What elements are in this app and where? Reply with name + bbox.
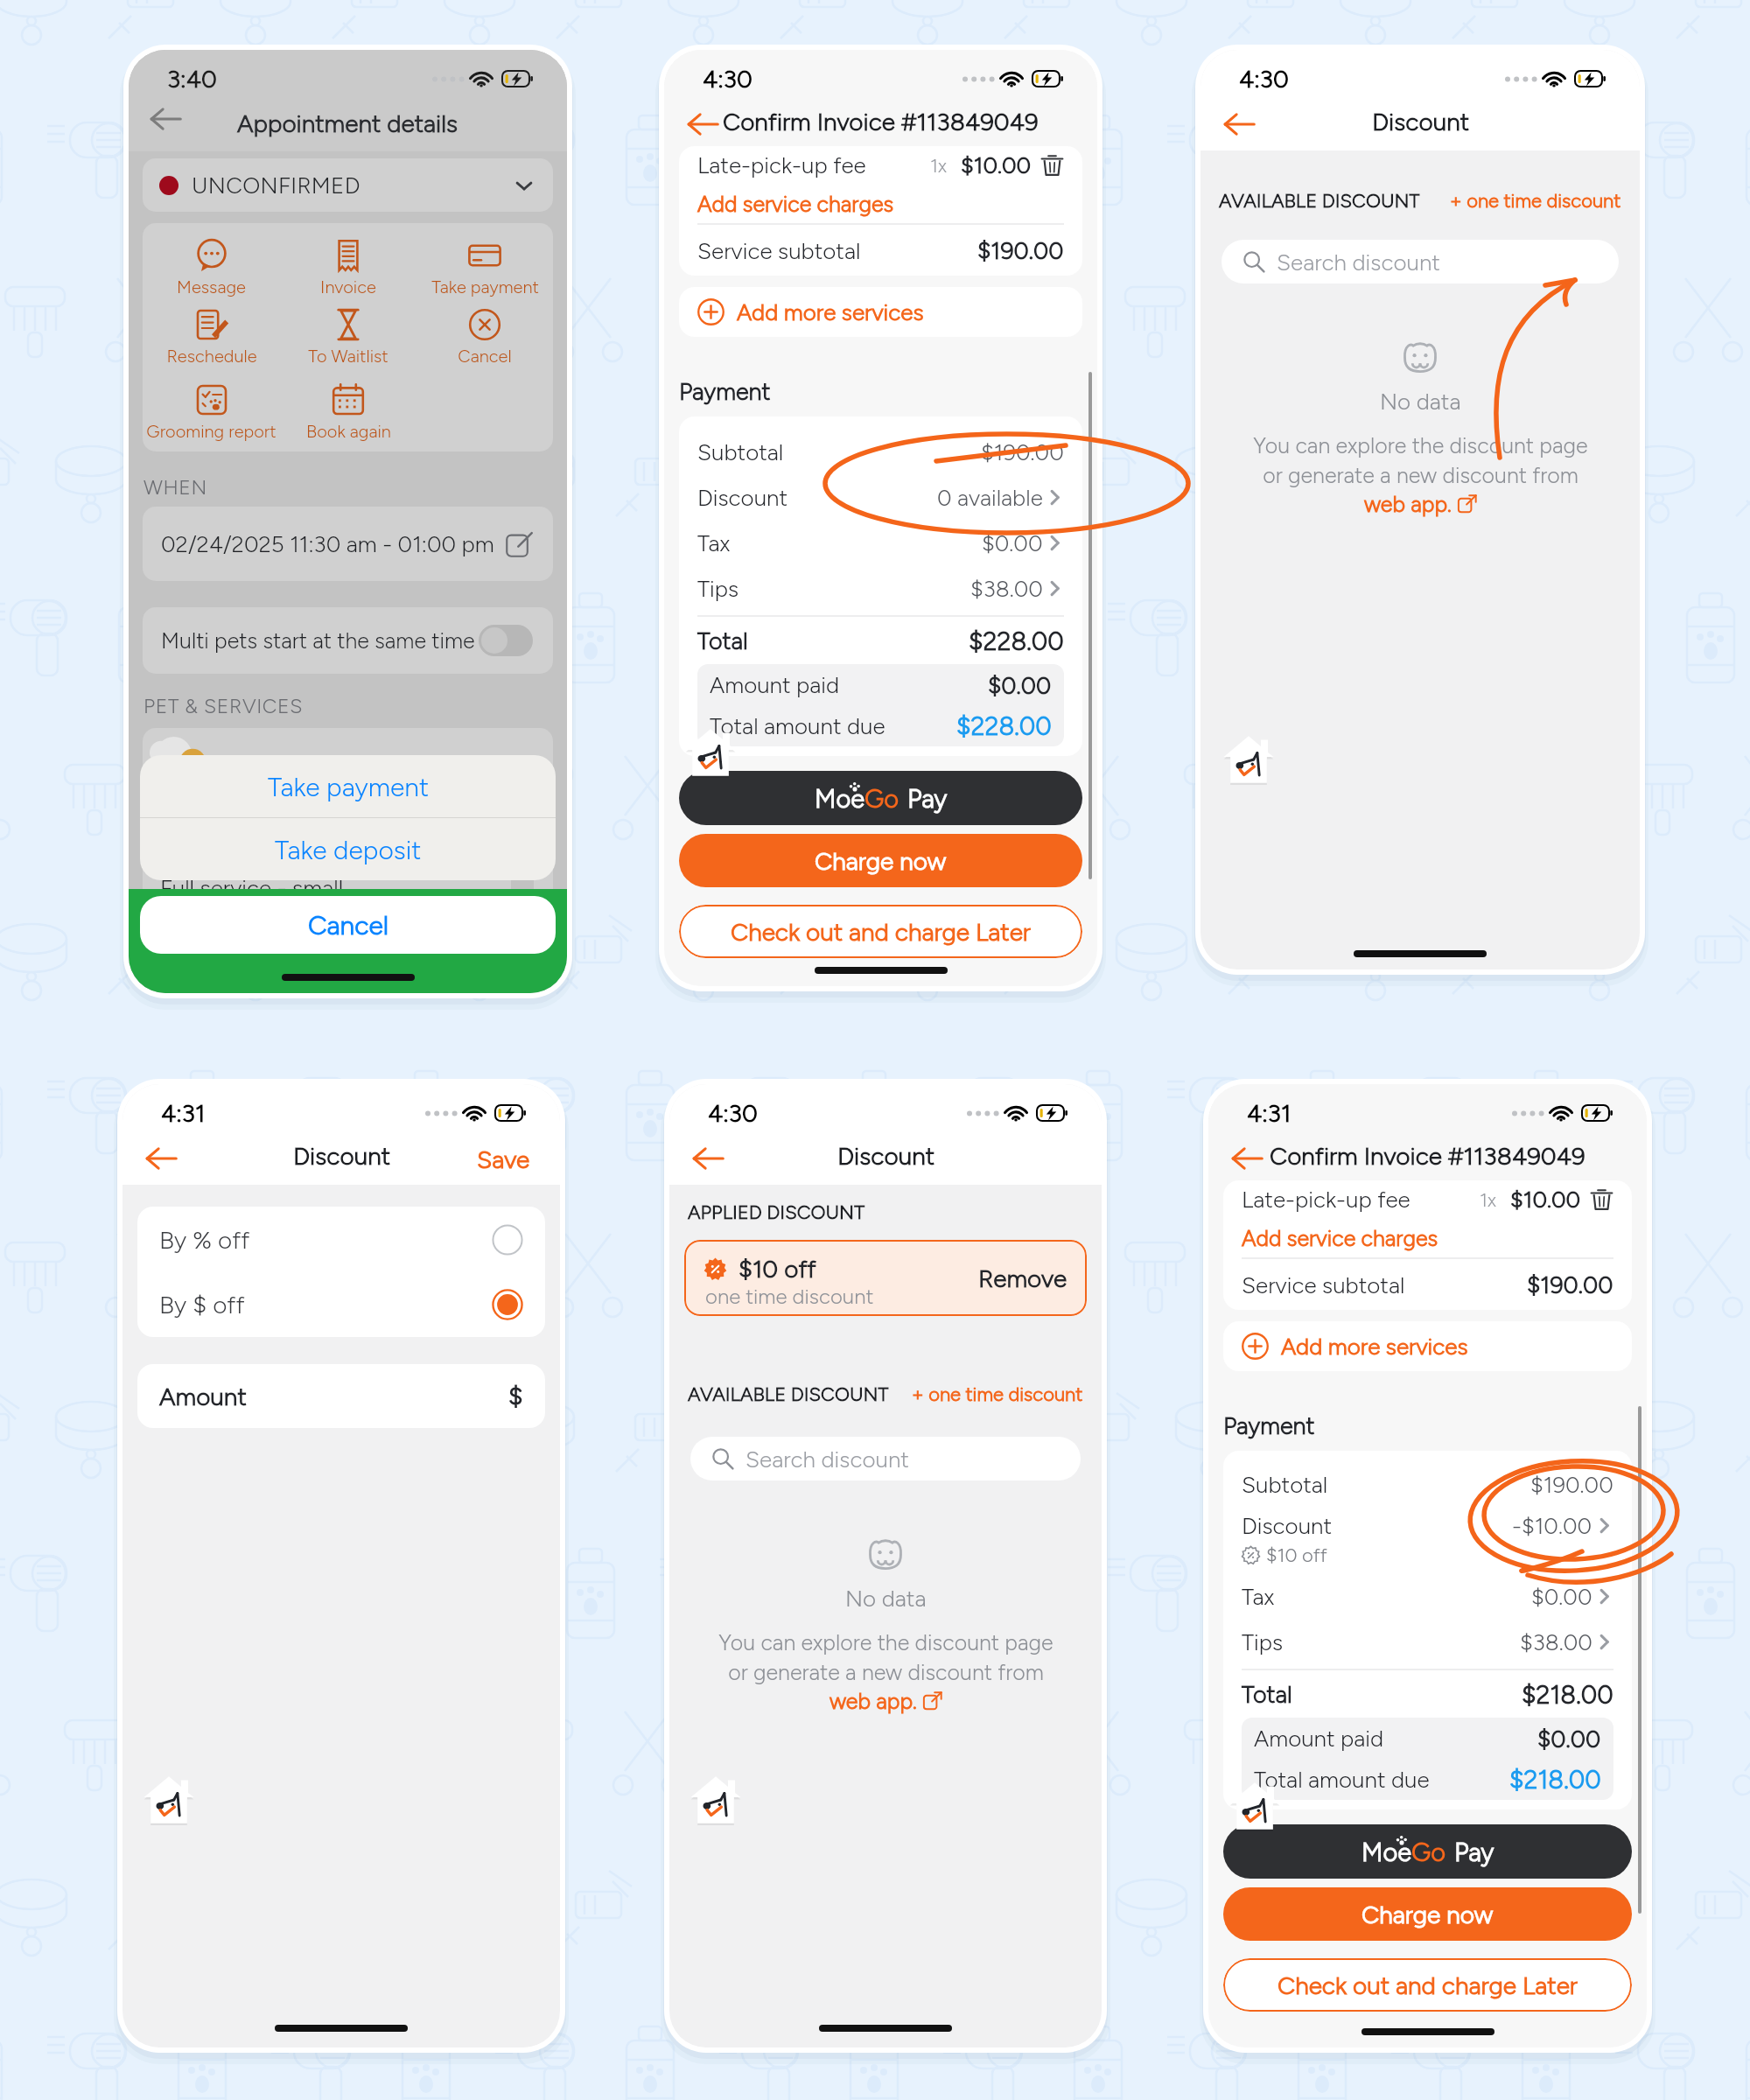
- button[interactable]: 02/24/2025 11:30 am - 01:00 pm: [143, 507, 553, 581]
- staticText: 4:30: [708, 1098, 758, 1128]
- button[interactable]: Back: [138, 1136, 184, 1181]
- button[interactable]: Grooming report: [143, 382, 280, 442]
- staticText: Subtotal: [1242, 1471, 1530, 1498]
- button[interactable]: Back: [1216, 101, 1262, 147]
- button[interactable]: Subtotal: [697, 429, 1064, 474]
- button[interactable]: Take deposit: [140, 818, 556, 880]
- button[interactable]: Search discount: [1221, 240, 1619, 283]
- staticText: Late-pick-up fee: [697, 151, 930, 178]
- button[interactable]: Tips: [697, 565, 1064, 611]
- staticText: $10 off: [738, 1254, 816, 1284]
- button[interactable]: web app.: [1364, 491, 1477, 517]
- staticText: Check out and charge Later: [731, 917, 1031, 947]
- button[interactable]: Message: [143, 238, 280, 297]
- staticText: Amount paid: [710, 671, 988, 698]
- button[interactable]: Delete item: [1040, 153, 1064, 177]
- button[interactable]: Tax: [697, 520, 1064, 565]
- button[interactable]: Check out and charge Later: [1223, 1958, 1632, 2012]
- staticText: Tips: [697, 575, 970, 602]
- button[interactable]: By $ off: [137, 1272, 545, 1337]
- button[interactable]: To Waitlist: [280, 307, 416, 367]
- button[interactable]: Reschedule: [143, 307, 280, 367]
- staticText: PET & SERVICES: [143, 694, 303, 718]
- button[interactable]: Add service charges: [1242, 1225, 1438, 1251]
- button[interactable]: Back: [685, 1136, 731, 1181]
- staticText: web app.: [829, 1688, 917, 1714]
- staticText: Pay: [1454, 1837, 1494, 1867]
- button[interactable]: By % off: [137, 1207, 545, 1272]
- staticText: Add more services: [737, 298, 924, 325]
- button[interactable]: Amount: [137, 1364, 545, 1428]
- button[interactable]: Invoice: [280, 238, 416, 297]
- staticText: Total: [697, 626, 969, 654]
- staticText: Go: [864, 783, 899, 814]
- button[interactable]: + one time discount: [1450, 189, 1621, 212]
- staticText: $190.00: [981, 438, 1064, 465]
- staticText: UNCONFIRMED: [192, 171, 360, 199]
- staticText: You can explore the discount page or gen…: [1253, 432, 1588, 488]
- button[interactable]: Cancel: [140, 896, 556, 954]
- button[interactable]: Search discount: [690, 1437, 1081, 1480]
- button[interactable]: Back: [680, 101, 725, 147]
- button[interactable]: Charge now: [1223, 1887, 1632, 1941]
- button[interactable]: Book again: [280, 382, 416, 442]
- staticText: Check out and charge Later: [1277, 1970, 1578, 2000]
- staticText: 4:31: [161, 1098, 206, 1128]
- staticText: Discount: [1372, 107, 1469, 136]
- staticText: 0 available: [937, 484, 1043, 511]
- button[interactable]: Tax: [1242, 1573, 1613, 1619]
- staticText: Moe: [1361, 1837, 1411, 1867]
- staticText: Search discount: [745, 1445, 909, 1473]
- button[interactable]: Remove: [978, 1263, 1067, 1293]
- button[interactable]: Multi pets start at the same time: [143, 607, 553, 674]
- button[interactable]: Add more services: [1223, 1321, 1632, 1371]
- staticText: $228.00: [969, 626, 1064, 656]
- button[interactable]: Moe: [679, 771, 1082, 825]
- other: Back: [692, 1143, 724, 1174]
- button[interactable]: + one time discount: [912, 1382, 1083, 1405]
- staticText: Take payment: [431, 276, 539, 297]
- button[interactable]: $10 off: [684, 1240, 1087, 1316]
- button[interactable]: Moe: [1223, 1824, 1632, 1879]
- staticText: Multi pets start at the same time: [161, 627, 475, 654]
- button[interactable]: Back: [1224, 1136, 1270, 1181]
- staticText: Add more services: [1281, 1333, 1468, 1360]
- staticText: Discount: [697, 484, 937, 511]
- staticText: Tips: [1242, 1628, 1520, 1655]
- button[interactable]: Subtotal: [1242, 1461, 1613, 1507]
- staticText: 02/24/2025 11:30 am - 01:00 pm: [161, 530, 494, 557]
- button[interactable]: Discount: [697, 474, 1064, 520]
- staticText: Cancel: [308, 909, 388, 941]
- button[interactable]: Check out and charge Later: [679, 905, 1082, 958]
- staticText: Tax: [697, 529, 982, 556]
- staticText: Late-pick-up fee: [1242, 1186, 1480, 1213]
- staticText: Payment: [679, 377, 771, 405]
- staticText: $0.00: [1531, 1583, 1592, 1610]
- button[interactable]: Save: [473, 1141, 534, 1178]
- staticText: Pay: [907, 783, 948, 814]
- button[interactable]: Discount: [1242, 1507, 1613, 1573]
- staticText: one time discount: [705, 1284, 874, 1309]
- staticText: $10.00: [1510, 1186, 1581, 1213]
- button[interactable]: web app.: [829, 1688, 942, 1714]
- button[interactable]: Charge now: [679, 834, 1082, 887]
- button[interactable]: Add more services: [679, 287, 1082, 337]
- staticText: -$10.00: [1512, 1512, 1592, 1539]
- other: Back: [687, 108, 718, 140]
- staticText: Full service - small: [160, 874, 344, 901]
- button[interactable]: Delete item: [1590, 1187, 1613, 1211]
- button[interactable]: UNCONFIRMED: [143, 158, 553, 212]
- button[interactable]: Multi pets start at the same time toggle: [479, 625, 533, 656]
- button[interactable]: Take payment: [416, 238, 553, 297]
- button[interactable]: Take payment: [140, 755, 556, 817]
- staticText: web app.: [1364, 491, 1452, 517]
- staticText: $218.00: [1509, 1764, 1601, 1795]
- button[interactable]: Add service charges: [697, 191, 894, 217]
- staticText: Invoice: [320, 276, 376, 297]
- staticText: $38.00: [1520, 1628, 1592, 1655]
- staticText: APPLIED DISCOUNT: [688, 1200, 865, 1223]
- staticText: Appointment details: [237, 108, 458, 138]
- staticText: Amount: [159, 1382, 508, 1411]
- button[interactable]: Cancel: [416, 307, 553, 367]
- button[interactable]: Tips: [1242, 1619, 1613, 1664]
